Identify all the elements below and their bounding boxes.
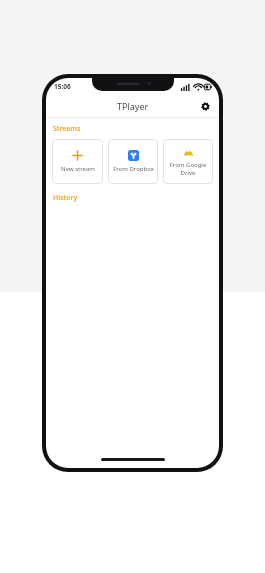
button[interactable]: New stream <box>52 139 103 184</box>
staticText: New stream <box>61 165 95 173</box>
button[interactable]: Settings <box>198 99 212 113</box>
staticText: From Dropbox <box>113 165 154 173</box>
staticText: TPlayer <box>117 100 149 112</box>
button[interactable]: From Google Drive <box>163 139 213 184</box>
staticText: From Google Drive <box>166 161 210 177</box>
staticText: Streams <box>53 124 81 134</box>
staticText: History <box>53 193 78 203</box>
button[interactable]: From Dropbox <box>108 139 158 184</box>
staticText: 15:06 <box>54 82 71 91</box>
